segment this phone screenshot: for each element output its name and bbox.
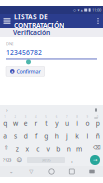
button[interactable]: 2 bbox=[10, 115, 21, 128]
staticText: x bbox=[25, 144, 29, 153]
button[interactable]: . bbox=[67, 154, 77, 166]
staticText: › bbox=[6, 106, 8, 114]
button[interactable]: More options bbox=[93, 14, 103, 28]
button[interactable]: ▲ bbox=[6, 66, 45, 76]
button[interactable]: ñ bbox=[93, 128, 103, 141]
button[interactable]: 4 bbox=[31, 115, 41, 128]
staticText: ñ bbox=[96, 131, 100, 140]
button[interactable]: 6 bbox=[51, 115, 62, 128]
staticText: o bbox=[85, 119, 89, 128]
staticText: v bbox=[47, 144, 50, 153]
staticText: 2 bbox=[14, 115, 16, 119]
staticText: j bbox=[66, 131, 68, 140]
button[interactable]: Switch keyboard bbox=[85, 166, 99, 177]
button[interactable]: j bbox=[62, 128, 72, 141]
button[interactable]: 1 bbox=[0, 115, 10, 128]
button[interactable]: Enter bbox=[88, 154, 102, 166]
staticText: Verificación bbox=[13, 28, 50, 37]
button[interactable]: Backspace bbox=[91, 141, 103, 154]
staticText: e bbox=[24, 119, 28, 128]
staticText: . bbox=[71, 156, 73, 164]
button[interactable]: g bbox=[41, 128, 51, 141]
button[interactable]: 7 bbox=[62, 115, 72, 128]
staticText: 04:05 bbox=[41, 157, 50, 163]
button[interactable]: Hide keyboard bbox=[4, 166, 18, 177]
staticText: g bbox=[44, 131, 48, 140]
button[interactable]: 3 bbox=[21, 115, 31, 128]
staticText: i bbox=[76, 119, 78, 128]
staticText: 0 bbox=[97, 115, 99, 119]
staticText: 7 bbox=[66, 115, 68, 119]
button[interactable]: l bbox=[82, 128, 93, 141]
staticText: m bbox=[76, 144, 82, 153]
staticText: h bbox=[55, 131, 59, 140]
button[interactable]: Home bbox=[44, 166, 58, 177]
button[interactable]: Recents bbox=[65, 166, 79, 177]
button[interactable]: x bbox=[22, 141, 33, 154]
staticText: y bbox=[55, 119, 58, 128]
staticText: z bbox=[16, 144, 19, 153]
staticText: 6 bbox=[56, 115, 58, 119]
staticText: ⌫ bbox=[93, 144, 101, 151]
button[interactable]: Emoji bbox=[14, 154, 25, 166]
button[interactable]: Menu bbox=[0, 14, 14, 28]
button[interactable]: d bbox=[21, 128, 31, 141]
button[interactable]: n bbox=[63, 141, 74, 154]
button[interactable]: 9 bbox=[82, 115, 93, 128]
staticText: 3 bbox=[25, 115, 27, 119]
staticText: Confirmar bbox=[17, 68, 41, 75]
staticText: ▽ bbox=[29, 168, 33, 175]
staticText: s bbox=[14, 131, 17, 140]
staticText: ▲ bbox=[11, 70, 13, 73]
staticText: ⇧ bbox=[4, 144, 8, 151]
button[interactable]: Back bbox=[24, 166, 38, 177]
staticText: ?123 bbox=[3, 157, 11, 163]
staticText: k bbox=[75, 131, 79, 140]
button[interactable]: Shift bbox=[0, 141, 12, 154]
staticText: 4 bbox=[35, 115, 37, 119]
button[interactable]: 0 bbox=[93, 115, 103, 128]
staticText: d bbox=[24, 131, 28, 140]
staticText: u bbox=[65, 119, 69, 128]
staticText: 1 bbox=[4, 115, 6, 119]
button[interactable]: k bbox=[72, 128, 82, 141]
staticText: ▴ bbox=[81, 8, 83, 12]
staticText: p bbox=[96, 119, 100, 128]
staticText: DNI bbox=[6, 41, 13, 46]
button[interactable]: a bbox=[0, 128, 10, 141]
button[interactable]: ?123 bbox=[0, 154, 14, 166]
staticText: ▾ bbox=[77, 8, 79, 12]
staticText: 5 bbox=[45, 115, 47, 119]
button[interactable]: b bbox=[53, 141, 63, 154]
button[interactable]: 5 bbox=[41, 115, 51, 128]
staticText: c bbox=[36, 144, 39, 153]
staticText: ☺ bbox=[16, 157, 22, 163]
staticText: r bbox=[35, 119, 38, 128]
staticText: ◇ bbox=[73, 8, 76, 12]
button[interactable]: m bbox=[74, 141, 84, 154]
staticText: q bbox=[3, 119, 7, 128]
staticText: LISTAS DE CONTRATACIÓN bbox=[14, 12, 64, 30]
staticText: t bbox=[45, 119, 47, 128]
staticText: b bbox=[56, 144, 60, 153]
staticText: 9 bbox=[86, 115, 88, 119]
button[interactable]: f bbox=[31, 128, 41, 141]
staticText: a bbox=[3, 131, 7, 140]
staticText: 123456782 bbox=[6, 48, 42, 57]
staticText: ⌄ bbox=[9, 168, 13, 175]
button[interactable]: h bbox=[51, 128, 62, 141]
staticText: 11:00 bbox=[92, 7, 101, 13]
button[interactable]: More suggestions bbox=[3, 105, 11, 115]
button[interactable]: Space bbox=[25, 154, 67, 166]
staticText: l bbox=[86, 131, 88, 140]
button[interactable]: z bbox=[12, 141, 22, 154]
staticText: 8 bbox=[76, 115, 78, 119]
staticText: → bbox=[93, 157, 97, 163]
button[interactable]: 8 bbox=[72, 115, 82, 128]
staticText: f bbox=[35, 131, 37, 140]
staticText: n bbox=[67, 144, 71, 153]
button[interactable]: v bbox=[43, 141, 53, 154]
button[interactable]: c bbox=[33, 141, 43, 154]
button[interactable]: Voice input bbox=[92, 105, 100, 115]
button[interactable]: s bbox=[10, 128, 21, 141]
